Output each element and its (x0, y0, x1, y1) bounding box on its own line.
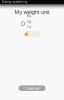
staticText: Continue (24, 85, 39, 91)
button[interactable]: Continue (18, 85, 45, 91)
staticText: Kilograms (27, 13, 33, 34)
staticText: Testing something (1, 0, 27, 4)
staticText: My weight unit (14, 8, 49, 16)
